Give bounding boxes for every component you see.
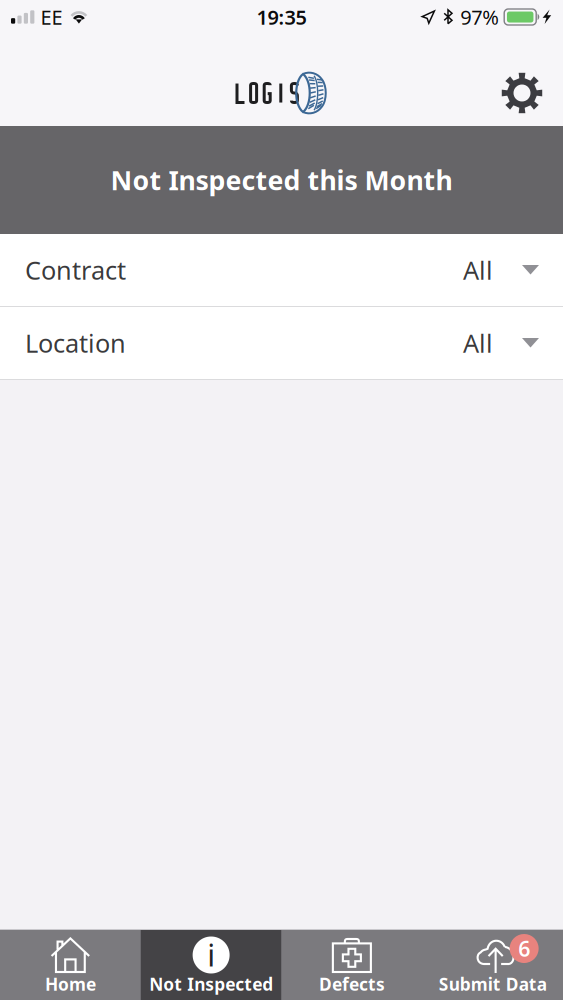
staticText: Contract	[25, 253, 126, 287]
staticText: 97%	[460, 4, 499, 30]
button[interactable]: 6	[422, 930, 563, 1000]
staticText: Not Inspected this Month	[110, 162, 452, 198]
staticText: Location	[25, 326, 126, 360]
button[interactable]: Contract	[0, 234, 563, 306]
button[interactable]: Location	[0, 307, 563, 379]
staticText: EE	[40, 4, 62, 30]
staticText: Submit Data	[439, 972, 547, 995]
button[interactable]: Settings	[488, 63, 556, 123]
staticText: Home	[45, 972, 96, 995]
staticText: Not Inspected	[149, 972, 273, 995]
button[interactable]: Home	[0, 930, 141, 1000]
staticText: Defects	[319, 972, 385, 995]
staticText: 6	[518, 934, 530, 963]
staticText: All	[463, 326, 493, 360]
staticText: All	[463, 253, 493, 287]
staticText: i	[207, 934, 215, 975]
button[interactable]: i	[141, 930, 282, 1000]
staticText: 19:35	[256, 4, 306, 30]
button[interactable]: Defects	[281, 930, 422, 1000]
